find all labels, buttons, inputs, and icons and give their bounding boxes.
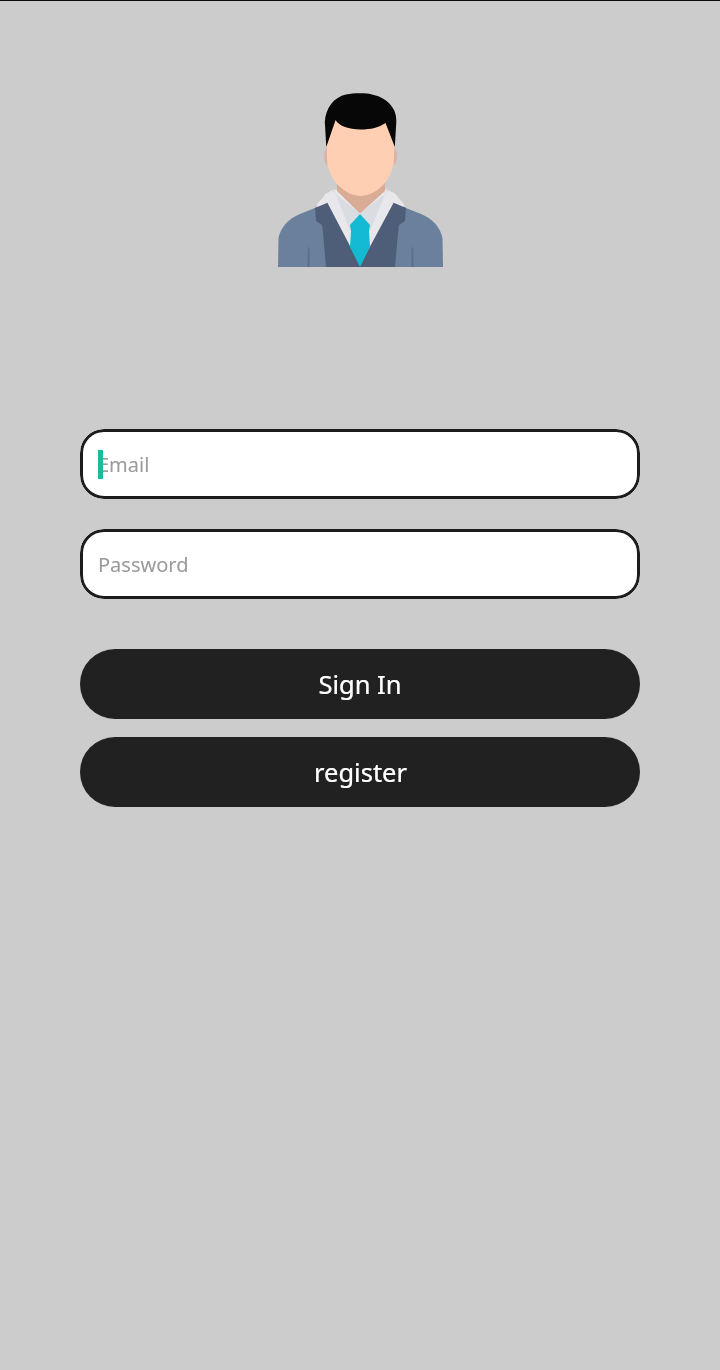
staticText: Password (98, 551, 189, 578)
staticText: Email (98, 451, 150, 478)
staticText: register (314, 755, 407, 790)
button[interactable]: Email (80, 429, 640, 499)
other: Profile avatar (276, 88, 446, 268)
button[interactable]: register (80, 737, 640, 807)
staticText: Sign In (318, 667, 402, 702)
button[interactable]: Password (80, 529, 640, 599)
button[interactable]: Sign In (80, 649, 640, 719)
